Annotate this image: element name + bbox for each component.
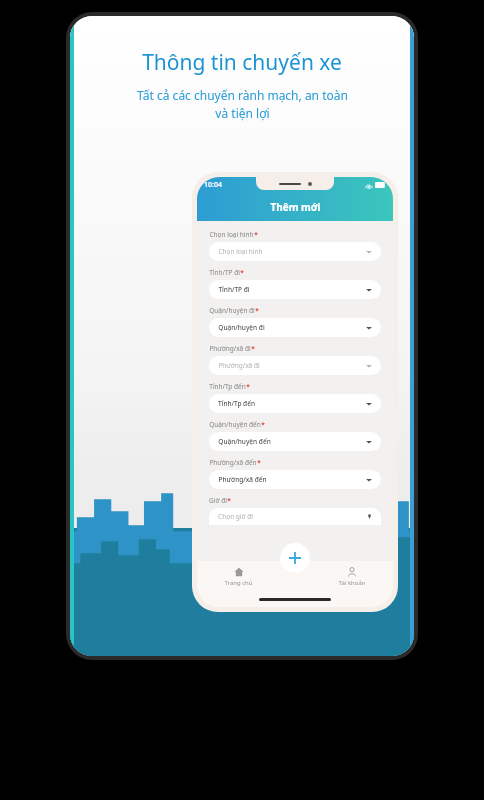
button[interactable]: Quận/huyện đến — [209, 432, 381, 451]
staticText: * — [254, 230, 258, 239]
staticText: và tiện lợi — [215, 105, 270, 121]
button[interactable]: Tỉnh/Tp đến — [209, 394, 381, 413]
button[interactable]: Phường/xã đến — [209, 470, 381, 489]
staticText: Tất cả các chuyến rành mạch, an toàn — [137, 87, 348, 103]
staticText: Quận/huyện đến — [218, 437, 271, 446]
staticText: * — [251, 344, 255, 353]
staticText: 10:04 — [204, 180, 222, 190]
staticText: Trang chủ — [224, 579, 253, 587]
staticText: Tỉnh/Tp đến — [209, 382, 246, 391]
staticText: Thông tin chuyến xe — [142, 48, 342, 77]
button[interactable]: Trang chủ — [197, 567, 280, 587]
staticText: Quận/huyện đi — [209, 306, 255, 315]
staticText: * — [261, 420, 265, 429]
button[interactable]: Chọn loại hình — [209, 242, 381, 261]
staticText: Quận/huyện đi — [218, 323, 265, 332]
button[interactable]: Chọn giờ đi — [209, 508, 381, 525]
staticText: Chọn loại hình — [218, 247, 263, 256]
staticText: * — [240, 268, 244, 277]
staticText: * — [246, 382, 250, 391]
staticText: Thêm mới — [270, 200, 321, 214]
staticText: Tỉnh/Tp đến — [218, 399, 255, 408]
staticText: * — [255, 306, 259, 315]
staticText: Phường/xã đến — [209, 458, 257, 467]
staticText: Chọn giờ đi — [218, 512, 253, 521]
staticText: Phường/xã đi — [218, 361, 260, 370]
staticText: * — [227, 496, 231, 505]
staticText: Quận/huyện đến — [209, 420, 261, 429]
staticText: Phường/xã đến — [218, 475, 267, 484]
button[interactable]: Tài khoản — [310, 567, 393, 587]
staticText: * — [257, 458, 261, 467]
staticText: Phường/xã đi — [209, 344, 251, 353]
staticText: Giờ đi — [209, 496, 227, 505]
staticText: Tỉnh/TP đi — [218, 285, 250, 294]
staticText: Tài khoản — [338, 579, 366, 587]
button[interactable]: Quận/huyện đi — [209, 318, 381, 337]
button[interactable]: Add new trip — [280, 543, 310, 573]
staticText: Tỉnh/TP đi — [209, 268, 240, 277]
button[interactable]: Tỉnh/TP đi — [209, 280, 381, 299]
button[interactable]: Phường/xã đi — [209, 356, 381, 375]
staticText: Chọn loại hình — [209, 230, 254, 239]
